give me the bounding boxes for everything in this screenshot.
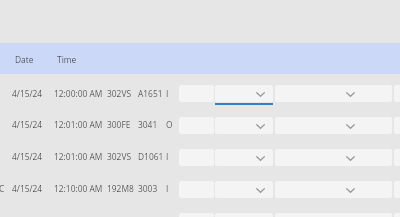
- staticText: 192M8: [107, 183, 134, 194]
- button[interactable]: Select status: [215, 149, 273, 166]
- staticText: 4/15/24: [12, 88, 43, 99]
- staticText: O: [166, 119, 173, 130]
- staticText: 4/15/24: [12, 151, 43, 162]
- button[interactable]: Select remark: [275, 85, 392, 102]
- staticText: Date: [15, 54, 34, 65]
- staticText: 12:00:00 AM: [54, 88, 103, 99]
- button[interactable]: Select remark: [275, 149, 392, 166]
- staticText: I: [166, 151, 169, 162]
- staticText: 300FE: [107, 119, 131, 130]
- staticText: 3003: [138, 183, 158, 194]
- staticText: 12:10:00 AM: [54, 183, 103, 194]
- staticText: 12:01:00 AM: [54, 119, 103, 130]
- staticText: 4/15/24: [12, 183, 43, 194]
- staticText: C: [0, 183, 5, 194]
- button[interactable]: Select status: [215, 85, 273, 102]
- staticText: 302VS: [107, 88, 131, 99]
- button[interactable]: Select remark: [275, 117, 392, 134]
- staticText: I: [166, 183, 169, 194]
- staticText: 3041: [138, 119, 158, 130]
- button[interactable]: Column headers: [0, 43, 400, 74]
- staticText: 4/15/24: [12, 119, 43, 130]
- button[interactable]: Select remark: [275, 181, 392, 198]
- staticText: D1061: [138, 151, 164, 162]
- staticText: 302VS: [107, 151, 131, 162]
- staticText: I: [166, 88, 169, 99]
- staticText: Time: [57, 54, 77, 65]
- button[interactable]: Select status: [215, 117, 273, 134]
- staticText: A1651: [138, 88, 163, 99]
- button[interactable]: Select status: [215, 181, 273, 198]
- staticText: 12:01:00 AM: [54, 151, 103, 162]
